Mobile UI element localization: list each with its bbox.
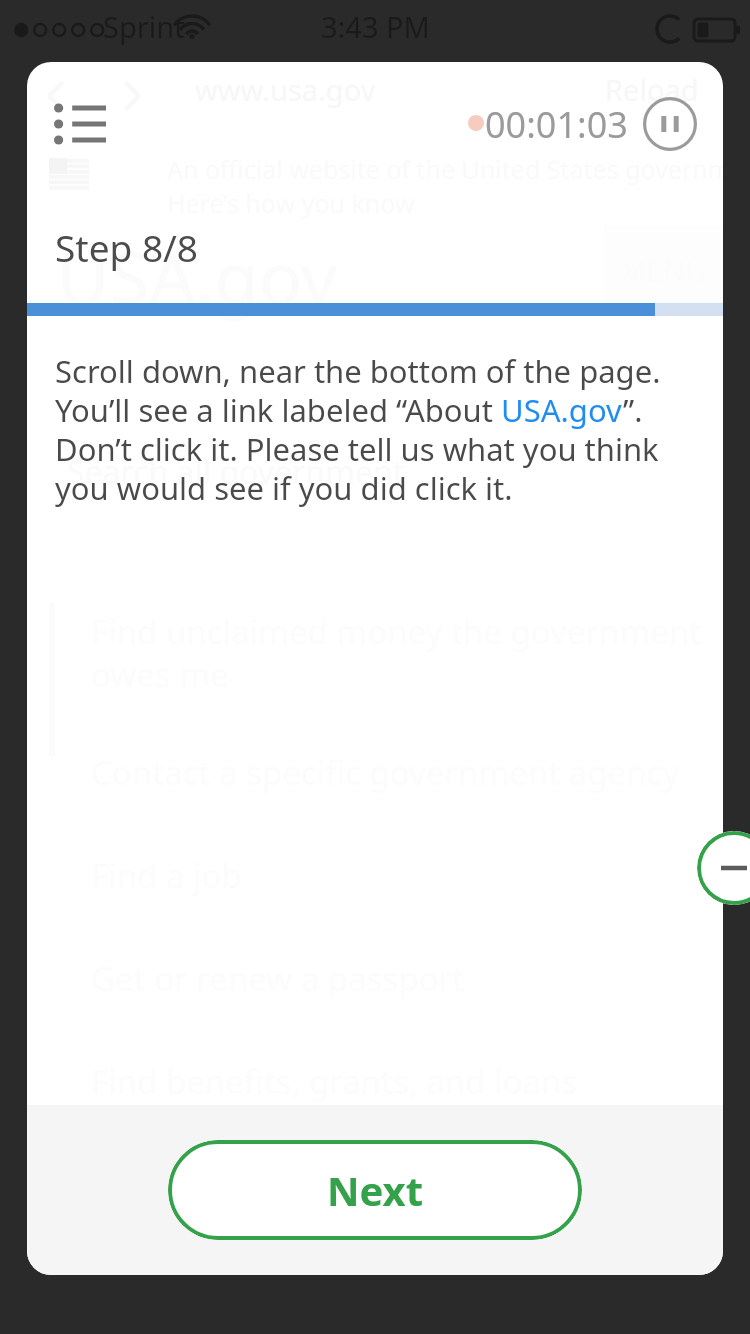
staticText: 3:43 PM	[321, 7, 430, 46]
staticText: Scroll down, near the bottom of the page…	[55, 352, 665, 508]
staticText: Sprint	[103, 7, 185, 46]
staticText: 00:01:03	[485, 100, 628, 149]
button[interactable]: Minimise	[697, 831, 750, 905]
button[interactable]: Steps list	[47, 95, 113, 153]
staticText: All Topics and Services	[137, 1169, 483, 1214]
button[interactable]: Pause	[643, 97, 697, 151]
staticText: Search all government	[67, 450, 405, 494]
staticText: USA.gov	[57, 227, 338, 325]
staticText: Next	[327, 1163, 424, 1217]
staticText: Reload	[605, 70, 699, 109]
button[interactable]: Next	[168, 1140, 582, 1240]
staticText: Step 8/8	[55, 222, 199, 272]
